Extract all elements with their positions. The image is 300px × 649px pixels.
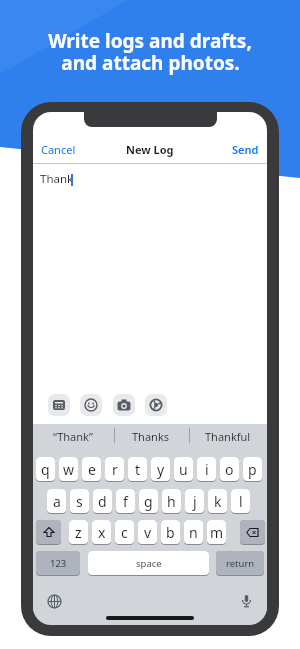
staticText: r (112, 460, 118, 479)
staticText: v (144, 523, 152, 542)
button[interactable] (80, 394, 102, 416)
staticText: e (88, 460, 96, 479)
staticText: z (75, 523, 82, 542)
staticText: Thankful (205, 429, 251, 444)
staticText: x (98, 523, 106, 542)
button[interactable]: u (174, 457, 193, 481)
staticText: y (157, 460, 165, 479)
button[interactable]: n (184, 520, 203, 544)
staticText: n (189, 523, 198, 542)
button[interactable]: “Thank” (33, 424, 113, 449)
button[interactable]: f (116, 489, 135, 513)
staticText: l (239, 492, 243, 511)
staticText: i (205, 460, 209, 479)
staticText: h (167, 492, 176, 511)
staticText: New Log (126, 142, 174, 157)
button[interactable]: b (161, 520, 180, 544)
staticText: q (41, 460, 50, 479)
staticText: t (135, 460, 141, 479)
button[interactable] (113, 394, 135, 416)
button[interactable]: s (70, 489, 89, 513)
staticText: Write logs and drafts, (48, 28, 252, 54)
staticText: c (121, 523, 128, 542)
staticText: space (136, 557, 162, 570)
staticText: j (193, 492, 197, 511)
button[interactable]: z (69, 520, 88, 544)
button[interactable]: Thanks (113, 424, 189, 449)
staticText: p (248, 460, 257, 479)
button[interactable]: j (185, 489, 204, 513)
button[interactable]: c (115, 520, 134, 544)
button[interactable]: d (93, 489, 112, 513)
button[interactable]: Thankful (189, 424, 267, 449)
button[interactable] (240, 520, 265, 544)
button[interactable]: m (207, 520, 226, 544)
button[interactable]: Send (232, 142, 259, 157)
button[interactable]: space (88, 551, 209, 575)
staticText: return (226, 557, 255, 570)
button[interactable]: v (138, 520, 157, 544)
button[interactable]: o (220, 457, 239, 481)
staticText: g (144, 492, 153, 511)
button[interactable] (48, 394, 70, 416)
staticText: k (214, 492, 222, 511)
staticText: “Thank” (53, 429, 93, 444)
button[interactable]: return (216, 551, 264, 575)
button[interactable]: r (105, 457, 124, 481)
staticText: w (63, 460, 75, 479)
staticText: u (179, 460, 188, 479)
button[interactable]: a (47, 489, 66, 513)
button[interactable]: p (243, 457, 262, 481)
button[interactable]: w (59, 457, 78, 481)
button[interactable]: g (139, 489, 158, 513)
button[interactable]: k (208, 489, 227, 513)
staticText: 123 (50, 557, 67, 570)
button[interactable]: i (197, 457, 216, 481)
staticText: m (210, 523, 224, 542)
button[interactable]: e (82, 457, 101, 481)
staticText: s (76, 492, 83, 511)
staticText: d (98, 492, 107, 511)
staticText: b (166, 523, 175, 542)
button[interactable]: y (151, 457, 170, 481)
button[interactable]: t (128, 457, 147, 481)
button[interactable]: h (162, 489, 181, 513)
button[interactable]: l (231, 489, 250, 513)
staticText: o (225, 460, 234, 479)
button[interactable] (145, 394, 167, 416)
staticText: a (53, 492, 61, 511)
button[interactable]: 123 (36, 551, 80, 575)
staticText: Thanks (132, 429, 170, 444)
staticText: Thank (40, 171, 74, 187)
staticText: f (123, 492, 128, 511)
staticText: and attach photos. (61, 50, 240, 76)
button[interactable]: x (92, 520, 111, 544)
button[interactable]: Cancel (41, 142, 76, 157)
button[interactable]: q (36, 457, 55, 481)
button[interactable] (36, 520, 61, 544)
